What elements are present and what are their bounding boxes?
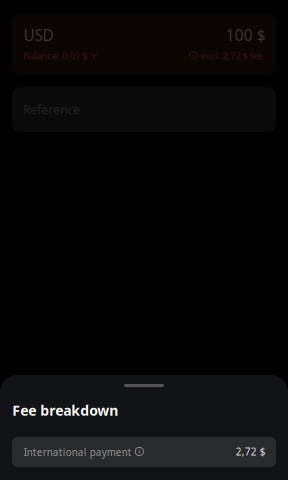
staticText: 2,72 $ xyxy=(236,445,266,458)
staticText: International payment xyxy=(24,445,132,459)
button[interactable]: USD xyxy=(12,14,276,75)
button[interactable]: International payment xyxy=(12,437,276,467)
staticText: Balance: 0,01 $ xyxy=(23,49,87,62)
staticText: 100 $ xyxy=(226,25,266,46)
staticText: excl. 2,72 $ fee xyxy=(200,49,262,62)
staticText: USD xyxy=(23,25,53,46)
staticText: Fee breakdown xyxy=(12,401,118,420)
staticText: Reference xyxy=(23,101,80,118)
